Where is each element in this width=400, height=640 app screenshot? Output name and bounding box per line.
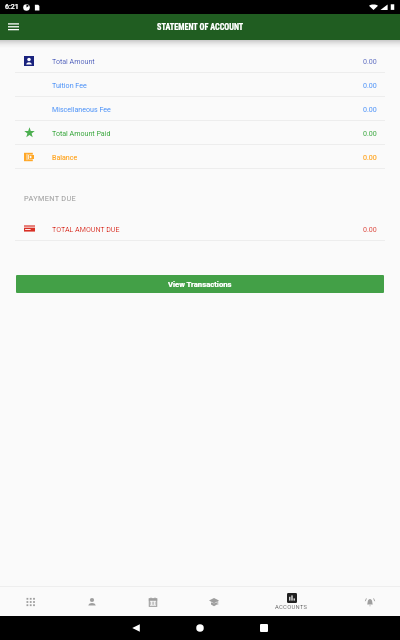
button[interactable]: Notifications [339, 587, 400, 616]
staticText: Total Amount Paid [52, 129, 111, 137]
staticText: 0.00 [363, 225, 377, 233]
button[interactable]: Academics [183, 587, 244, 616]
button[interactable]: Menu [0, 14, 27, 40]
button[interactable]: Recents [232, 616, 296, 640]
staticText: ACCOUNTS [275, 604, 308, 611]
staticText: TOTAL AMOUNT DUE [52, 225, 120, 233]
button[interactable]: Total Amount [0, 49, 400, 73]
staticText: STATEMENT OF ACCOUNT [157, 22, 244, 32]
staticText: Total Amount [52, 57, 95, 65]
button[interactable]: TOTAL AMOUNT DUE [0, 217, 400, 241]
staticText: 0.00 [363, 129, 377, 137]
button[interactable]: ACCOUNTS [244, 587, 339, 616]
staticText: 0.00 [363, 105, 377, 113]
staticText: PAYMENT DUE [24, 194, 77, 203]
button[interactable]: Miscellaneous Fee [0, 97, 400, 121]
button[interactable]: Apps [0, 587, 61, 616]
staticText: Miscellaneous Fee [52, 105, 111, 113]
staticText: 6:21 [5, 3, 19, 11]
staticText: Tuition Fee [52, 81, 87, 89]
button[interactable]: Home [168, 616, 232, 640]
staticText: View Transactions [168, 280, 232, 289]
button[interactable]: Calendar [122, 587, 183, 616]
button[interactable]: View Transactions [16, 275, 384, 293]
button[interactable]: Back [104, 616, 168, 640]
staticText: 0.00 [363, 57, 377, 65]
staticText: 0.00 [363, 153, 377, 161]
button[interactable]: Tuition Fee [0, 73, 400, 97]
button[interactable]: Total Amount Paid [0, 121, 400, 145]
staticText: Balance [52, 153, 78, 161]
button[interactable]: Profile [61, 587, 122, 616]
button[interactable]: Balance [0, 145, 400, 169]
staticText: 0.00 [363, 81, 377, 89]
